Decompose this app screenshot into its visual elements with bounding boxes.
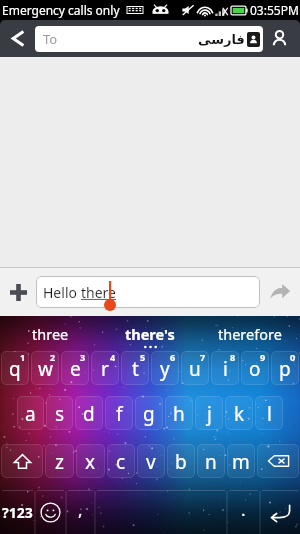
button[interactable]: therefore [200, 316, 300, 351]
staticText: 2 [50, 351, 56, 363]
button[interactable]: v [137, 444, 165, 478]
staticText: p [279, 356, 291, 382]
staticText: y [160, 356, 170, 382]
staticText: u [189, 356, 201, 382]
staticText: k [234, 401, 245, 427]
staticText: there's [125, 324, 175, 344]
staticText: b [175, 449, 187, 475]
button[interactable]: Emoji [35, 486, 66, 534]
button[interactable]: Contacts [263, 20, 296, 57]
staticText: m [232, 449, 250, 475]
button[interactable]: w [31, 351, 59, 385]
staticText: q [9, 356, 21, 382]
button[interactable]: s [46, 396, 73, 430]
button[interactable]: a [17, 396, 44, 430]
button[interactable]: k [225, 396, 253, 430]
staticText: 7 [200, 351, 206, 363]
staticText: 5 [140, 351, 146, 363]
button[interactable]: Add attachment [0, 268, 36, 316]
button[interactable]: Backspace [257, 444, 299, 478]
staticText: therefore [218, 324, 282, 344]
staticText: . [241, 498, 246, 521]
staticText: 8 [230, 351, 236, 363]
staticText: i [223, 356, 228, 382]
button[interactable]: x [76, 444, 105, 478]
staticText: x [85, 449, 96, 475]
staticText: t [132, 356, 139, 382]
button[interactable]: Enter [260, 486, 300, 534]
button[interactable]: Space [95, 486, 227, 534]
button[interactable]: b [167, 444, 195, 478]
button[interactable]: there's [100, 316, 200, 351]
button[interactable]: Back [0, 20, 35, 57]
button[interactable]: . [227, 486, 260, 534]
staticText: d [83, 401, 95, 427]
staticText: l [267, 401, 272, 427]
staticText: there [81, 283, 116, 302]
staticText: r [101, 356, 109, 382]
staticText: n [205, 449, 217, 475]
staticText: h [173, 401, 185, 427]
staticText: three [32, 324, 69, 344]
staticText: Hello [43, 283, 81, 302]
staticText: 6 [170, 351, 176, 363]
button[interactable]: p [271, 351, 299, 385]
staticText: 03:55PM [250, 2, 299, 18]
button[interactable]: h [165, 396, 193, 430]
button[interactable]: To [35, 26, 263, 52]
button[interactable]: f [105, 396, 133, 430]
staticText: Emergency calls only [2, 2, 120, 18]
staticText: ?123 [2, 503, 33, 522]
button[interactable]: t [121, 351, 149, 385]
button[interactable]: three [0, 316, 100, 351]
staticText: 4 [110, 351, 116, 363]
button[interactable]: o [241, 351, 269, 385]
staticText: فارسی [198, 32, 245, 47]
staticText: a [25, 401, 36, 427]
staticText: f [116, 401, 123, 427]
staticText: To [43, 30, 58, 48]
button[interactable]: q [1, 351, 29, 385]
staticText: s [55, 401, 65, 427]
staticText: c [116, 449, 126, 475]
staticText: j [207, 401, 212, 427]
staticText: g [143, 401, 155, 427]
button[interactable]: i [211, 351, 239, 385]
staticText: 3 [80, 351, 86, 363]
staticText: 1 [20, 351, 26, 363]
staticText: w [38, 356, 53, 382]
button[interactable]: m [227, 444, 255, 478]
button[interactable]: d [75, 396, 103, 430]
button[interactable]: Send [260, 268, 300, 316]
button[interactable]: e [61, 351, 89, 385]
button[interactable]: r [91, 351, 119, 385]
staticText: o [249, 356, 261, 382]
button[interactable]: u [181, 351, 209, 385]
button[interactable]: Shift [1, 444, 43, 478]
staticText: e [70, 356, 81, 382]
button[interactable]: l [255, 396, 283, 430]
button[interactable]: Hello [36, 276, 260, 308]
staticText: v [146, 449, 156, 475]
staticText: , [78, 498, 83, 521]
staticText: 9 [260, 351, 266, 363]
staticText: 0 [290, 351, 296, 363]
staticText: z [55, 449, 64, 475]
button[interactable]: ?123 [0, 486, 35, 534]
button[interactable]: z [45, 444, 74, 478]
button[interactable]: y [151, 351, 179, 385]
button[interactable]: j [195, 396, 223, 430]
button[interactable]: , [66, 486, 95, 534]
button[interactable]: n [197, 444, 225, 478]
button[interactable]: c [107, 444, 135, 478]
button[interactable]: g [135, 396, 163, 430]
